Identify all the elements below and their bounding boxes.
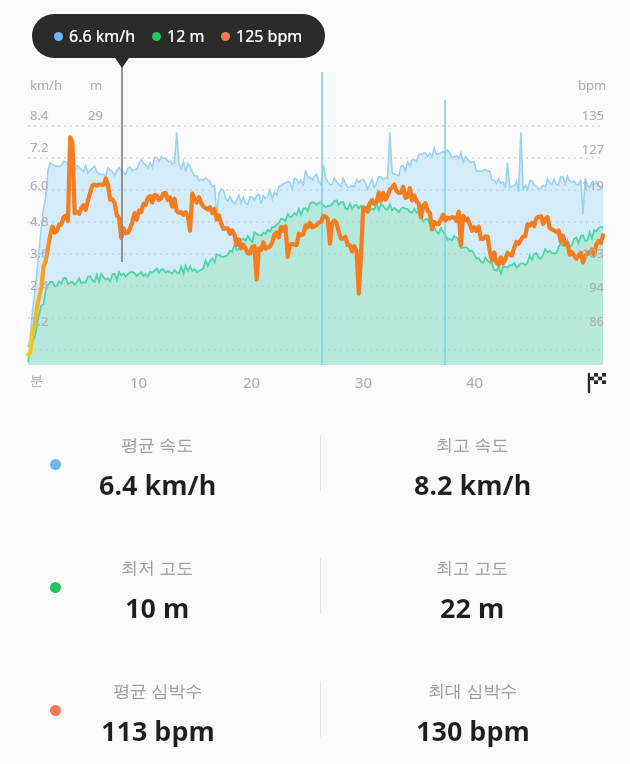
staticText: 1.2 bbox=[30, 312, 49, 330]
button[interactable]: 최저 고도 bbox=[0, 538, 630, 661]
staticText: 최대 심박수 bbox=[428, 679, 518, 702]
staticText: 7.2 bbox=[30, 138, 49, 156]
staticText: 127 bbox=[0, 140, 604, 158]
staticText: 40 bbox=[466, 372, 484, 392]
staticText: 4.8 bbox=[30, 212, 49, 230]
staticText: 22 m bbox=[440, 589, 505, 626]
staticText: 20 bbox=[243, 372, 261, 392]
staticText: 6.4 km/h bbox=[99, 466, 217, 503]
staticText: 130 bpm bbox=[416, 712, 530, 749]
staticText: 30 bbox=[355, 372, 373, 392]
staticText: 12 m bbox=[167, 25, 205, 47]
staticText: 103 bbox=[0, 244, 604, 262]
button[interactable]: 평균 속도 bbox=[0, 415, 630, 538]
staticText: 135 bbox=[0, 106, 604, 124]
staticText: 29 bbox=[88, 106, 103, 124]
button[interactable]: 평균 심박수 bbox=[0, 661, 630, 764]
staticText: 평균 속도 bbox=[121, 433, 194, 456]
staticText: 119 bbox=[0, 176, 604, 194]
staticText: 최저 고도 bbox=[121, 556, 194, 579]
staticText: 분 bbox=[30, 372, 43, 388]
staticText: 94 bbox=[0, 278, 604, 296]
staticText: 최고 고도 bbox=[436, 556, 509, 579]
staticText: 6.6 km/h bbox=[69, 25, 136, 47]
staticText: 2.4 bbox=[30, 276, 49, 294]
staticText: bpm bbox=[578, 76, 607, 94]
staticText: 8.2 km/h bbox=[414, 466, 532, 503]
staticText: km/h bbox=[30, 76, 62, 94]
staticText: 113 bpm bbox=[101, 712, 215, 749]
staticText: 평균 심박수 bbox=[113, 679, 203, 702]
staticText: 8.4 bbox=[30, 106, 49, 124]
staticText: 125 bpm bbox=[236, 25, 303, 47]
staticText: 10 bbox=[130, 372, 148, 392]
staticText: 86 bbox=[0, 312, 604, 330]
button[interactable]: 6.6 km/h bbox=[32, 14, 325, 58]
staticText: 3.6 bbox=[30, 244, 49, 262]
button[interactable]: Finish bbox=[586, 370, 610, 394]
staticText: 10 m bbox=[125, 589, 190, 626]
staticText: 6.0 bbox=[30, 176, 49, 194]
staticText: m bbox=[90, 76, 103, 94]
staticText: 최고 속도 bbox=[436, 433, 509, 456]
